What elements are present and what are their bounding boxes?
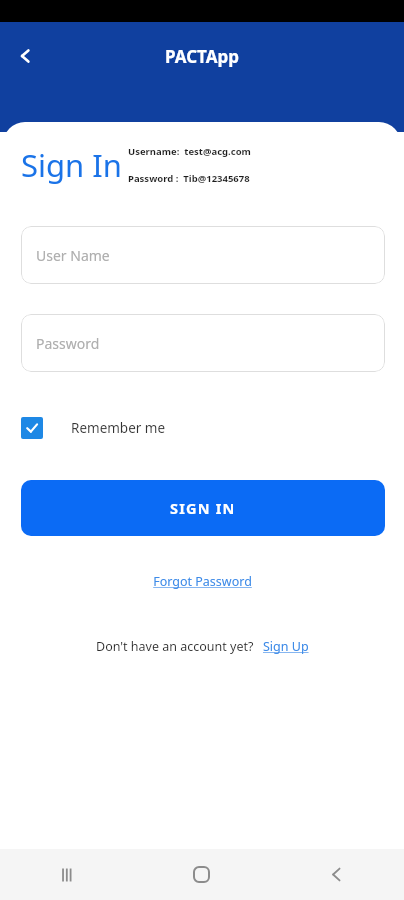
- staticText: Forgot Password: [153, 573, 252, 590]
- button[interactable]: Password: [21, 314, 385, 372]
- button[interactable]: Remember me: [21, 417, 166, 439]
- staticText: Remember me: [71, 419, 166, 437]
- staticText: Password : Tib@12345678: [128, 172, 250, 185]
- button[interactable]: Back: [6, 36, 46, 76]
- staticText: Don't have an account yet?: [96, 638, 254, 655]
- button[interactable]: Recent apps: [0, 849, 134, 900]
- button[interactable]: User Name: [21, 226, 385, 284]
- staticText: Sign Up: [263, 638, 309, 655]
- staticText: Sign In: [21, 144, 122, 186]
- button[interactable]: Home: [134, 849, 269, 900]
- staticText: SIGN IN: [170, 498, 236, 518]
- button[interactable]: Back: [269, 849, 404, 900]
- button[interactable]: Forgot Password: [153, 573, 252, 590]
- button[interactable]: SIGN IN: [21, 480, 385, 536]
- button[interactable]: Sign Up: [263, 638, 309, 655]
- staticText: Username: test@acg.com: [128, 145, 251, 158]
- staticText: Password: [36, 334, 100, 353]
- staticText: PACTApp: [165, 45, 239, 68]
- staticText: User Name: [36, 246, 110, 265]
